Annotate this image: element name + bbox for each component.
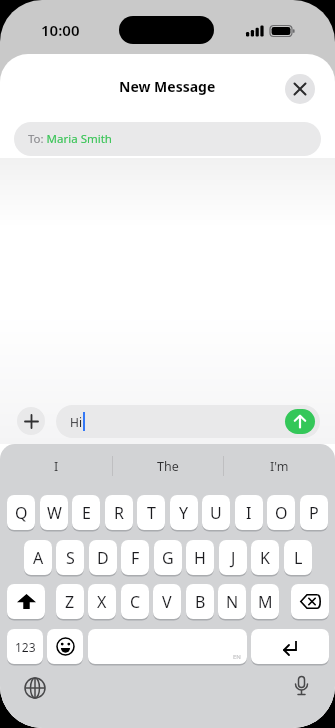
button[interactable]: W xyxy=(40,495,68,530)
staticText: I xyxy=(246,502,252,524)
staticText: H xyxy=(194,547,206,569)
button[interactable]: U xyxy=(202,495,230,530)
button[interactable] xyxy=(47,629,83,664)
button[interactable] xyxy=(285,74,315,104)
button[interactable] xyxy=(251,629,329,664)
staticText: X xyxy=(97,591,107,613)
button[interactable]: D xyxy=(89,540,117,575)
button[interactable]: X xyxy=(88,584,116,619)
button[interactable]: To: Maria Smith xyxy=(14,122,321,156)
staticText: Q xyxy=(15,502,28,524)
staticText: To: Maria Smith xyxy=(28,131,112,147)
staticText: F xyxy=(131,547,140,569)
staticText: K xyxy=(260,547,270,569)
staticText: New Message xyxy=(119,77,216,96)
staticText: P xyxy=(309,502,319,524)
button[interactable] xyxy=(22,675,48,701)
staticText: G xyxy=(162,547,174,569)
staticText: O xyxy=(275,502,288,524)
staticText: A xyxy=(33,547,44,569)
button[interactable]: EN xyxy=(88,629,247,664)
staticText: B xyxy=(195,591,206,613)
staticText: E xyxy=(82,502,91,524)
button[interactable]: Z xyxy=(56,584,84,619)
button[interactable]: J xyxy=(219,540,247,575)
button[interactable]: N xyxy=(218,584,246,619)
staticText: Z xyxy=(65,591,75,613)
button[interactable]: Y xyxy=(170,495,198,530)
staticText: R xyxy=(114,502,124,524)
button[interactable]: V xyxy=(153,584,181,619)
staticText: C xyxy=(130,591,141,613)
staticText: Y xyxy=(179,502,189,524)
staticText: The xyxy=(157,458,179,475)
button[interactable]: G xyxy=(154,540,182,575)
button[interactable]: R xyxy=(105,495,133,530)
button[interactable]: P xyxy=(300,495,328,530)
button[interactable]: M xyxy=(251,584,279,619)
button[interactable]: A xyxy=(24,540,52,575)
button[interactable] xyxy=(7,584,45,619)
staticText: T xyxy=(147,502,156,524)
button[interactable]: K xyxy=(251,540,279,575)
button[interactable]: 123 xyxy=(7,629,43,664)
button[interactable]: Q xyxy=(7,495,35,530)
button[interactable]: The xyxy=(123,454,213,478)
staticText: M xyxy=(258,591,273,613)
staticText: I'm xyxy=(270,458,289,475)
staticText: V xyxy=(162,591,172,613)
staticText: L xyxy=(294,547,303,569)
button[interactable] xyxy=(17,407,45,435)
staticText: W xyxy=(47,502,62,524)
staticText: 10:00 xyxy=(41,20,80,40)
button[interactable]: I xyxy=(235,495,263,530)
button[interactable]: I'm xyxy=(234,454,324,478)
staticText: D xyxy=(97,547,109,569)
button[interactable]: E xyxy=(72,495,100,530)
staticText: J xyxy=(231,547,236,569)
button[interactable]: T xyxy=(137,495,165,530)
staticText: N xyxy=(226,591,239,613)
button[interactable] xyxy=(291,584,329,619)
button[interactable]: L xyxy=(284,540,312,575)
button[interactable]: C xyxy=(121,584,149,619)
button[interactable]: F xyxy=(121,540,149,575)
button[interactable]: O xyxy=(267,495,295,530)
button[interactable] xyxy=(285,409,315,434)
staticText: Hi xyxy=(70,414,82,430)
button[interactable]: H xyxy=(186,540,214,575)
staticText: S xyxy=(66,547,75,569)
button[interactable]: I xyxy=(11,454,101,478)
staticText: U xyxy=(210,502,222,524)
button[interactable] xyxy=(288,674,314,700)
button[interactable]: B xyxy=(186,584,214,619)
staticText: 123 xyxy=(15,639,36,655)
staticText: I xyxy=(54,458,59,475)
button[interactable]: S xyxy=(56,540,84,575)
button[interactable]: Hi xyxy=(56,405,320,438)
staticText: EN xyxy=(233,653,241,661)
